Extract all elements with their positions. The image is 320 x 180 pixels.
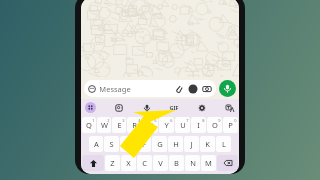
button[interactable]: U xyxy=(175,117,190,133)
button[interactable]: T xyxy=(143,117,158,133)
button[interactable]: Voice message xyxy=(219,80,236,97)
button[interactable]: Backspace xyxy=(217,155,238,171)
staticText: U xyxy=(180,120,186,130)
button[interactable]: Shift xyxy=(82,155,104,171)
staticText: T xyxy=(148,120,153,130)
button[interactable]: N xyxy=(185,155,200,171)
button[interactable]: Q xyxy=(82,117,96,133)
staticText: M xyxy=(205,158,212,168)
button[interactable]: O xyxy=(207,117,222,133)
staticText: 8 xyxy=(202,118,205,123)
button[interactable]: Payment xyxy=(188,84,198,94)
staticText: K xyxy=(205,139,210,149)
staticText: J xyxy=(190,139,193,149)
staticText: R xyxy=(132,120,137,130)
staticText: N xyxy=(190,158,196,168)
staticText: O xyxy=(212,120,218,130)
button[interactable]: C xyxy=(137,155,152,171)
staticText: 6 xyxy=(170,118,173,123)
button[interactable]: Settings xyxy=(196,102,207,113)
staticText: E xyxy=(117,120,122,130)
button[interactable]: D xyxy=(120,136,135,152)
button[interactable]: J xyxy=(184,136,199,152)
button[interactable]: Camera xyxy=(202,84,212,94)
staticText: L xyxy=(222,139,226,149)
staticText: S xyxy=(109,139,114,149)
other: Emoji xyxy=(88,85,96,93)
button[interactable]: Y xyxy=(159,117,174,133)
button[interactable]: Attach xyxy=(174,84,184,94)
button[interactable]: M xyxy=(201,155,216,171)
staticText: Z xyxy=(110,158,115,168)
staticText: F xyxy=(142,139,146,149)
button[interactable]: S xyxy=(104,136,119,152)
button[interactable]: I xyxy=(191,117,206,133)
staticText: 1 xyxy=(92,118,95,123)
staticText: GIF xyxy=(169,104,179,111)
staticText: V xyxy=(158,158,163,168)
staticText: G xyxy=(157,139,163,149)
staticText: Y xyxy=(164,120,169,130)
staticText: X xyxy=(126,158,131,168)
staticText: A xyxy=(94,139,99,149)
staticText: 5 xyxy=(154,118,157,123)
button[interactable]: Voice input xyxy=(141,102,152,113)
staticText: C xyxy=(142,158,147,168)
button[interactable]: GIF xyxy=(168,102,179,113)
staticText: P xyxy=(228,120,233,130)
button[interactable]: B xyxy=(169,155,184,171)
staticText: 7 xyxy=(186,118,189,123)
button[interactable]: W xyxy=(97,117,111,133)
button[interactable]: P xyxy=(223,117,238,133)
staticText: H xyxy=(173,139,179,149)
button[interactable]: Emoji xyxy=(84,80,216,97)
button[interactable]: V xyxy=(153,155,168,171)
staticText: 0 xyxy=(234,118,237,123)
button[interactable]: L xyxy=(216,136,231,152)
button[interactable]: X xyxy=(121,155,136,171)
button[interactable]: H xyxy=(168,136,183,152)
button[interactable]: Apps xyxy=(85,102,96,113)
button[interactable]: Stickers xyxy=(113,102,124,113)
button[interactable]: A xyxy=(89,136,103,152)
staticText: B xyxy=(174,158,179,168)
staticText: Q xyxy=(86,120,92,130)
staticText: W xyxy=(101,120,108,130)
button[interactable]: G xyxy=(152,136,167,152)
button[interactable]: K xyxy=(200,136,215,152)
staticText: 4 xyxy=(138,118,141,123)
staticText: D xyxy=(125,139,131,149)
button[interactable]: Z xyxy=(105,155,120,171)
button[interactable]: Translate xyxy=(224,102,235,113)
staticText: 2 xyxy=(107,118,110,123)
staticText: 3 xyxy=(122,118,125,123)
button[interactable]: E xyxy=(112,117,126,133)
staticText: Message xyxy=(99,84,131,94)
button[interactable]: R xyxy=(127,117,142,133)
button[interactable]: F xyxy=(136,136,151,152)
staticText: 9 xyxy=(218,118,221,123)
staticText: I xyxy=(197,120,200,130)
